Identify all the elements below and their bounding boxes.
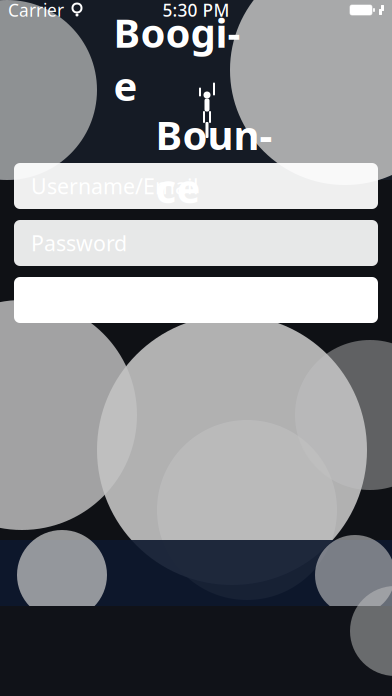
staticText: Password	[31, 229, 127, 257]
staticText: Username/Email	[31, 172, 199, 200]
staticText: Boogie	[113, 6, 240, 112]
button[interactable]: Username/Email	[14, 163, 378, 209]
button[interactable]: Login	[14, 277, 378, 323]
staticText: 5:30 PM	[162, 0, 229, 21]
button[interactable]: Password	[14, 220, 378, 266]
staticText: Bounce	[155, 108, 272, 214]
staticText: Carrier	[8, 0, 64, 21]
